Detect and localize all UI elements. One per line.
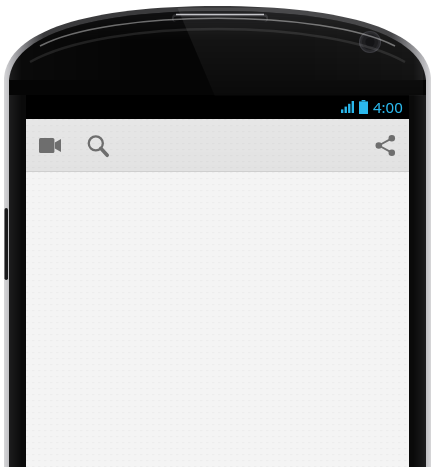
button[interactable]: Share — [361, 119, 409, 172]
staticText: 4:00 — [373, 97, 403, 117]
button[interactable]: Record video — [26, 119, 74, 172]
button[interactable]: Search — [74, 119, 122, 172]
